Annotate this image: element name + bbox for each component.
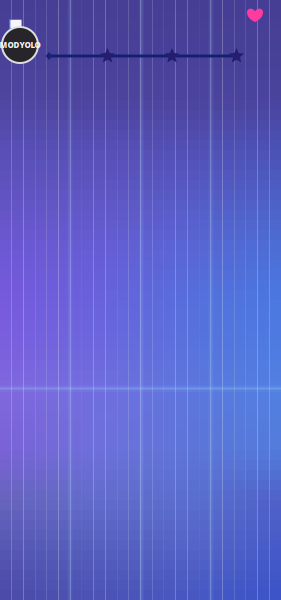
- button[interactable]: Favourite: [246, 6, 264, 24]
- button[interactable]: MODYOLO: [2, 27, 38, 63]
- staticText: MODYOLO: [0, 40, 40, 50]
